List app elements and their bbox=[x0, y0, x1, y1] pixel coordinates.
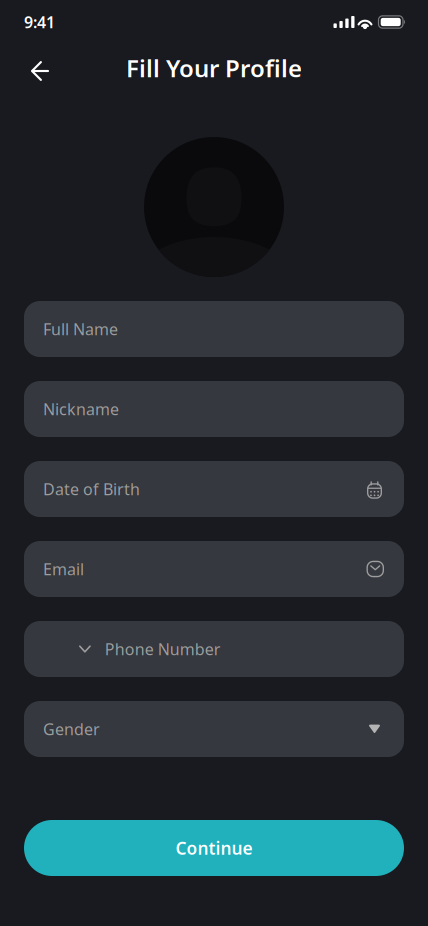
button[interactable]: Date of Birth bbox=[24, 461, 404, 517]
staticText: Continue bbox=[175, 836, 252, 859]
button[interactable]: Gender bbox=[24, 701, 404, 757]
staticText: Gender bbox=[43, 718, 100, 740]
staticText: Nickname bbox=[43, 398, 119, 420]
staticText: Email bbox=[43, 558, 84, 580]
button[interactable]: Full Name bbox=[24, 301, 404, 357]
staticText: Date of Birth bbox=[43, 478, 140, 500]
button[interactable]: Continue bbox=[24, 820, 404, 876]
staticText: Full Name bbox=[43, 318, 118, 340]
button[interactable]: Nickname bbox=[24, 381, 404, 437]
staticText: Phone Number bbox=[105, 638, 221, 660]
button[interactable]: Phone Number bbox=[24, 621, 404, 677]
staticText: Fill Your Profile bbox=[126, 52, 302, 84]
button[interactable]: Back bbox=[18, 46, 62, 90]
staticText: 9:41 bbox=[24, 11, 55, 33]
button[interactable]: Email bbox=[24, 541, 404, 597]
